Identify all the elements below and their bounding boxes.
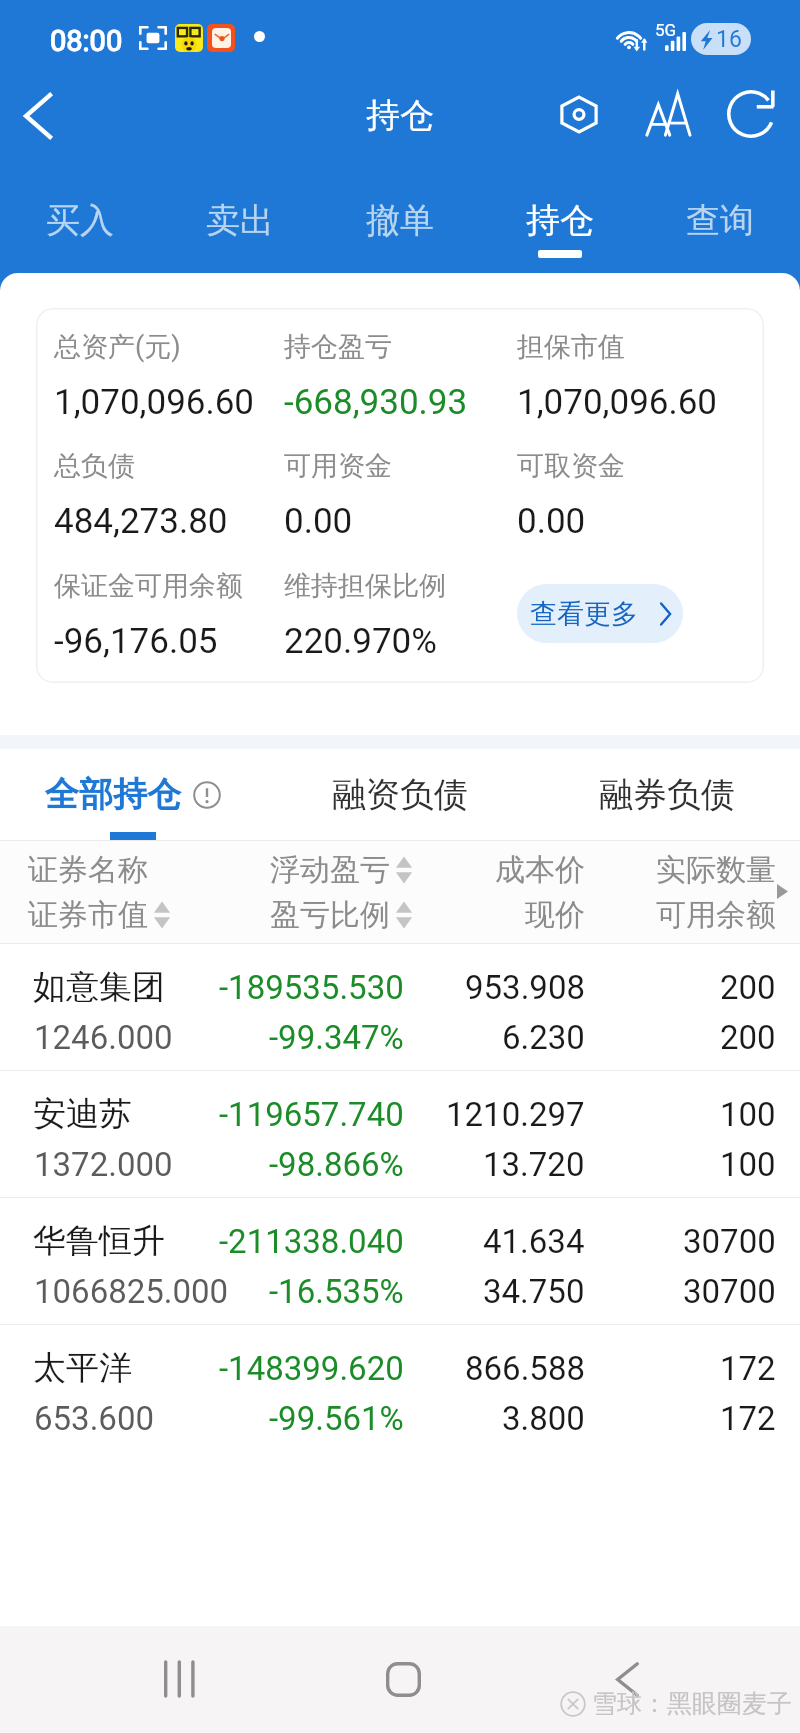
staticText: 866.588 bbox=[465, 1349, 585, 1388]
staticText: 34.750 bbox=[483, 1272, 585, 1311]
staticText: 可取资金 bbox=[517, 449, 625, 483]
button[interactable]: 华鲁恒升 bbox=[0, 1197, 800, 1324]
staticText: 查询 bbox=[686, 199, 754, 242]
staticText: 可用资金 bbox=[284, 449, 392, 483]
staticText: 100 bbox=[720, 1095, 776, 1134]
staticText: 总资产(元) bbox=[54, 330, 181, 364]
staticText: -119657.740 bbox=[219, 1095, 404, 1134]
staticText: 可用余额 bbox=[656, 896, 776, 934]
staticText: -99.347% bbox=[269, 1018, 404, 1057]
button[interactable]: Settings bbox=[544, 79, 614, 149]
staticText: 安迪苏 bbox=[33, 1093, 132, 1135]
staticText: 5G bbox=[655, 20, 677, 40]
staticText: 持仓盈亏 bbox=[284, 330, 392, 364]
staticText: 查看更多 bbox=[530, 597, 638, 631]
staticText: 16 bbox=[716, 26, 742, 53]
button[interactable]: Back bbox=[587, 1637, 667, 1721]
staticText: 融资负债 bbox=[332, 773, 468, 816]
button[interactable]: Recent apps bbox=[139, 1637, 219, 1721]
staticText: 172 bbox=[720, 1349, 776, 1388]
staticText: 13.720 bbox=[483, 1145, 585, 1184]
staticText: 1246.000 bbox=[34, 1018, 173, 1057]
staticText: 总负债 bbox=[54, 449, 135, 483]
staticText: 证券市值 bbox=[28, 896, 148, 934]
staticText: 卖出 bbox=[206, 199, 274, 242]
staticText: -189535.530 bbox=[219, 968, 404, 1007]
staticText: 实际数量 bbox=[656, 851, 776, 889]
staticText: 1210.297 bbox=[446, 1095, 585, 1134]
button[interactable]: 卖出 bbox=[160, 174, 320, 273]
staticText: 30700 bbox=[683, 1222, 776, 1261]
staticText: -99.561% bbox=[269, 1399, 404, 1438]
staticText: -668,930.93 bbox=[284, 382, 468, 423]
staticText: 30700 bbox=[683, 1272, 776, 1311]
button[interactable]: 持仓 bbox=[480, 174, 640, 273]
staticText: 维持担保比例 bbox=[284, 569, 446, 603]
button[interactable]: 太平洋 bbox=[0, 1324, 800, 1451]
button[interactable]: 买入 bbox=[0, 174, 160, 273]
staticText: 200 bbox=[720, 968, 776, 1007]
staticText: 保证金可用余额 bbox=[54, 569, 243, 603]
staticText: 484,273.80 bbox=[54, 501, 228, 542]
staticText: 融券负债 bbox=[599, 773, 735, 816]
staticText: 0.00 bbox=[517, 501, 586, 542]
staticText: -211338.040 bbox=[219, 1222, 404, 1261]
staticText: 持仓 bbox=[366, 94, 434, 137]
staticText: 现价 bbox=[525, 896, 585, 934]
staticText: 220.970% bbox=[284, 621, 437, 662]
staticText: 华鲁恒升 bbox=[33, 1220, 165, 1262]
staticText: 持仓 bbox=[526, 199, 594, 242]
staticText: 3.800 bbox=[502, 1399, 585, 1438]
staticText: -98.866% bbox=[269, 1145, 404, 1184]
staticText: 953.908 bbox=[465, 968, 585, 1007]
staticText: -148399.620 bbox=[219, 1349, 404, 1388]
button[interactable]: Font size bbox=[633, 79, 703, 149]
staticText: 200 bbox=[720, 1018, 776, 1057]
button[interactable]: 融券负债 bbox=[533, 749, 800, 840]
button[interactable]: Refresh bbox=[725, 79, 777, 149]
staticText: 653.600 bbox=[34, 1399, 154, 1438]
button[interactable]: 查看更多 bbox=[517, 584, 683, 643]
button[interactable]: 查询 bbox=[640, 174, 800, 273]
staticText: 成本价 bbox=[495, 851, 585, 889]
staticText: -96,176.05 bbox=[54, 621, 218, 662]
staticText: 买入 bbox=[46, 199, 114, 242]
button[interactable]: 撤单 bbox=[320, 174, 480, 273]
staticText: 08:00 bbox=[50, 24, 123, 58]
staticText: 浮动盈亏 bbox=[270, 851, 390, 889]
button[interactable]: 总资产(元) bbox=[36, 308, 764, 683]
staticText: 6.230 bbox=[502, 1018, 585, 1057]
staticText: 如意集团 bbox=[33, 966, 165, 1008]
staticText: 41.634 bbox=[483, 1222, 585, 1261]
staticText: 全部持仓 bbox=[45, 773, 181, 816]
staticText: 1,070,096.60 bbox=[517, 382, 718, 423]
staticText: 盈亏比例 bbox=[270, 896, 390, 934]
button[interactable]: Back bbox=[4, 70, 72, 162]
button[interactable]: 如意集团 bbox=[0, 943, 800, 1070]
staticText: 撤单 bbox=[366, 199, 434, 242]
button[interactable]: 融资负债 bbox=[266, 749, 533, 840]
button[interactable]: 全部持仓 bbox=[0, 749, 266, 840]
staticText: 1,070,096.60 bbox=[54, 382, 255, 423]
staticText: 1372.000 bbox=[34, 1145, 173, 1184]
staticText: 证券名称 bbox=[28, 851, 148, 889]
staticText: 1066825.000 bbox=[34, 1272, 229, 1311]
staticText: 雪球：黑眼圈麦子 bbox=[592, 1688, 792, 1719]
staticText: 0.00 bbox=[284, 501, 353, 542]
staticText: 172 bbox=[720, 1399, 776, 1438]
staticText: -16.535% bbox=[269, 1272, 404, 1311]
button[interactable]: Home bbox=[363, 1637, 443, 1721]
staticText: 100 bbox=[720, 1145, 776, 1184]
staticText: 太平洋 bbox=[33, 1347, 132, 1389]
button[interactable]: 安迪苏 bbox=[0, 1070, 800, 1197]
staticText: 担保市值 bbox=[517, 330, 625, 364]
